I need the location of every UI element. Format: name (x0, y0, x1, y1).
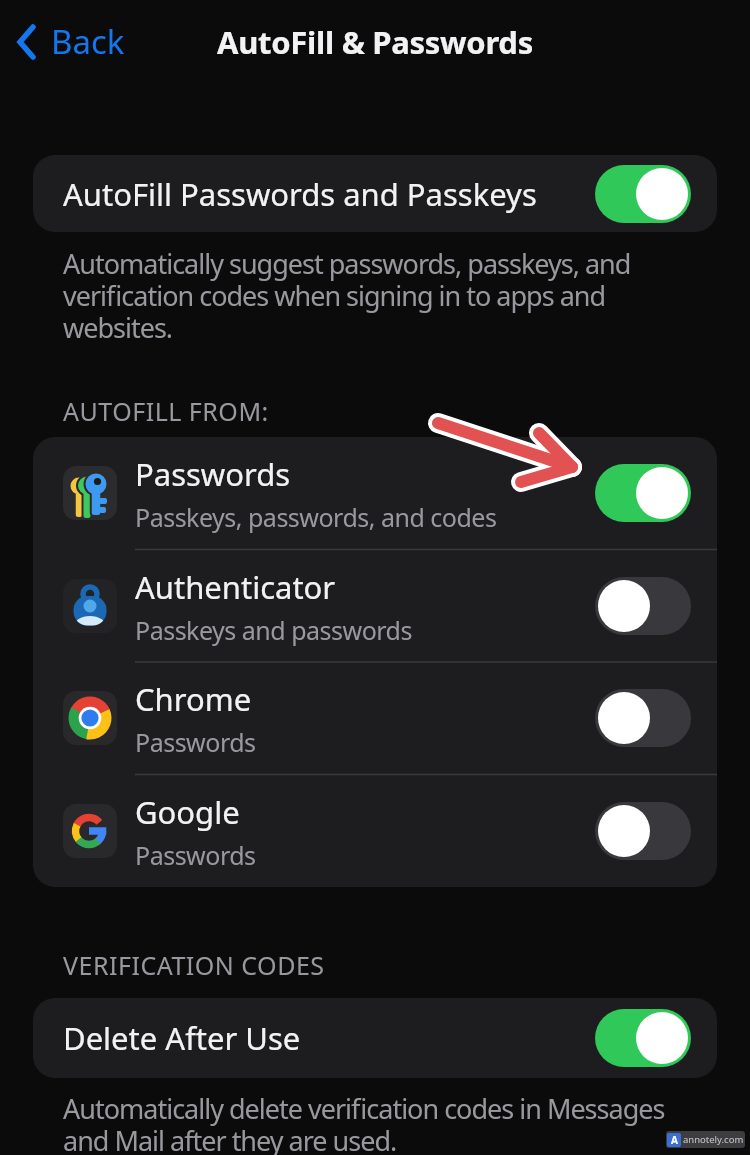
button[interactable] (595, 689, 691, 747)
button[interactable] (595, 802, 691, 860)
button[interactable] (595, 1009, 691, 1067)
staticText: Chrome (135, 678, 252, 720)
staticText: Automatically delete verification codes … (63, 1090, 665, 1155)
staticText: Google (135, 791, 240, 833)
staticText: Passwords (135, 838, 256, 872)
staticText: Passkeys, passwords, and codes (135, 500, 497, 534)
staticText: Automatically suggest passwords, passkey… (63, 245, 631, 346)
staticText: Passwords (135, 725, 256, 759)
staticText: annotely.com (683, 1133, 744, 1146)
staticText: Passwords (135, 453, 291, 495)
staticText: Back (51, 19, 125, 64)
button[interactable]: AutoFill Passwords and Passkeys (33, 155, 717, 232)
button[interactable] (595, 577, 691, 635)
button[interactable]: Chrome (33, 662, 717, 774)
staticText: AutoFill & Passwords (0, 21, 750, 63)
staticText: A (671, 1133, 678, 1147)
staticText: Delete After Use (63, 1017, 301, 1059)
button[interactable] (595, 464, 691, 522)
button[interactable]: Google (33, 775, 717, 887)
staticText: AUTOFILL FROM: (63, 394, 269, 428)
button[interactable]: Passwords (33, 437, 717, 549)
button[interactable]: Authenticator (33, 550, 717, 662)
button[interactable]: Back (16, 19, 125, 64)
staticText: Passkeys and passwords (135, 613, 412, 647)
button[interactable] (595, 165, 691, 223)
staticText: AutoFill Passwords and Passkeys (63, 173, 537, 215)
staticText: Authenticator (135, 566, 336, 608)
staticText: VERIFICATION CODES (63, 948, 325, 982)
button[interactable]: Delete After Use (33, 998, 717, 1078)
